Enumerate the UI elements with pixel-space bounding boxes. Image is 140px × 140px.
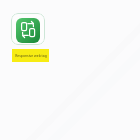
button[interactable]: Responsive web tag bbox=[12, 49, 49, 62]
button[interactable]: Swap app bbox=[11, 13, 45, 45]
staticText: Responsive web tag bbox=[15, 53, 47, 58]
